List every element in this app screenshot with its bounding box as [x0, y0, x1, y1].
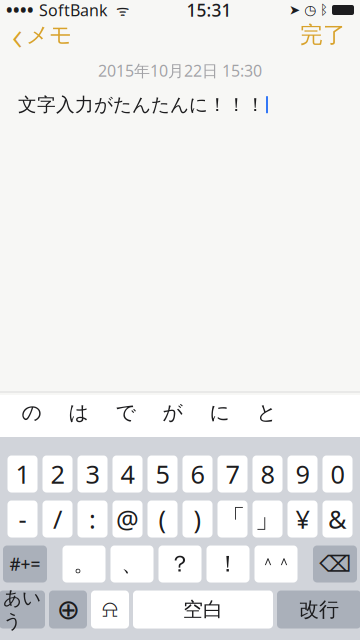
button[interactable]: と — [243, 392, 290, 432]
button[interactable]: - — [7, 500, 37, 537]
staticText: / — [53, 502, 62, 536]
staticText: ⌫ — [319, 551, 351, 577]
staticText: •••• — [6, 0, 39, 21]
button[interactable]: #+= — [3, 545, 47, 582]
staticText: 7 — [225, 457, 239, 491]
button[interactable]: / — [42, 500, 72, 537]
staticText: SoftBank — [39, 0, 108, 21]
button[interactable]: Dictation — [91, 590, 129, 628]
button[interactable]: あいう — [0, 590, 45, 628]
button[interactable]: 4 — [112, 455, 142, 492]
staticText: ＾＾ — [260, 554, 292, 574]
staticText: ( — [158, 502, 166, 536]
staticText: の — [21, 400, 41, 425]
staticText: 改行 — [299, 597, 339, 622]
staticText: で — [115, 400, 135, 425]
button[interactable]: ( — [147, 500, 177, 537]
staticText: : — [89, 502, 96, 536]
staticText: 1 — [15, 457, 29, 491]
button[interactable]: で — [102, 392, 149, 432]
button[interactable]: が — [149, 392, 196, 432]
button[interactable]: ‹ — [0, 4, 72, 65]
staticText: と — [256, 400, 276, 425]
staticText: @ — [116, 502, 139, 536]
staticText: 5 — [155, 457, 169, 491]
staticText: あいう — [3, 587, 41, 632]
button[interactable]: 」 — [252, 500, 282, 537]
button[interactable]: : — [77, 500, 107, 537]
button[interactable]: ) — [182, 500, 212, 537]
button[interactable]: 7 — [217, 455, 247, 492]
button[interactable]: 「 — [217, 500, 247, 537]
staticText: 完了 — [300, 21, 346, 49]
button[interactable]: @ — [112, 500, 142, 537]
staticText: ？ — [168, 550, 191, 578]
button[interactable]: 。 — [62, 545, 105, 582]
staticText: 文字入力がたんたんに！！！ — [18, 93, 265, 116]
button[interactable]: ＾＾ — [254, 545, 297, 582]
staticText: ‹ — [12, 8, 23, 61]
staticText: メモ — [26, 21, 72, 49]
staticText: に — [209, 400, 229, 425]
staticText: 」 — [255, 503, 280, 534]
button[interactable]: は — [55, 392, 102, 432]
button[interactable]: ¥ — [287, 500, 317, 537]
button[interactable]: 改行 — [277, 590, 360, 628]
staticText: 、 — [121, 551, 142, 577]
button[interactable]: に — [196, 392, 243, 432]
staticText: ) — [193, 502, 201, 536]
staticText: 3 — [85, 457, 99, 491]
button[interactable]: 完了 — [300, 17, 360, 53]
staticText: 。 — [73, 551, 94, 577]
staticText: & — [328, 502, 347, 536]
staticText: 6 — [190, 457, 204, 491]
button[interactable]: 2 — [42, 455, 72, 492]
button[interactable]: ？ — [158, 545, 201, 582]
staticText: ⊕ — [56, 594, 79, 625]
button[interactable]: 9 — [287, 455, 317, 492]
staticText: 4 — [120, 457, 134, 491]
button[interactable]: 6 — [182, 455, 212, 492]
button[interactable]: の — [8, 392, 55, 432]
staticText: 8 — [260, 457, 274, 491]
staticText: 15:31 — [186, 0, 231, 21]
staticText: 空白 — [183, 597, 223, 622]
button[interactable]: 、 — [110, 545, 153, 582]
button[interactable]: ！ — [206, 545, 249, 582]
staticText: ¥ — [295, 502, 309, 536]
button[interactable]: Next keyboard — [49, 590, 87, 628]
staticText: は — [68, 400, 88, 425]
staticText: ➤ ◷ ᛒ — [289, 2, 328, 17]
staticText: ！ — [216, 550, 239, 578]
staticText: - — [18, 502, 26, 536]
staticText: が — [162, 400, 182, 425]
staticText: 9 — [295, 457, 309, 491]
button[interactable]: 1 — [7, 455, 37, 492]
button[interactable]: 5 — [147, 455, 177, 492]
button[interactable]: 0 — [322, 455, 352, 492]
staticText: 2 — [50, 457, 64, 491]
staticText: ⍾ — [102, 598, 118, 621]
staticText: 2015年10月22日 15:30 — [98, 60, 262, 81]
button[interactable]: 空白 — [133, 590, 273, 628]
button[interactable]: 3 — [77, 455, 107, 492]
staticText: 「 — [220, 503, 245, 534]
staticText: 0 — [330, 457, 344, 491]
button[interactable]: & — [322, 500, 352, 537]
button[interactable]: 8 — [252, 455, 282, 492]
button[interactable]: Delete — [313, 545, 357, 582]
staticText: ᯤ — [108, 0, 129, 20]
staticText: #+= — [9, 552, 40, 575]
